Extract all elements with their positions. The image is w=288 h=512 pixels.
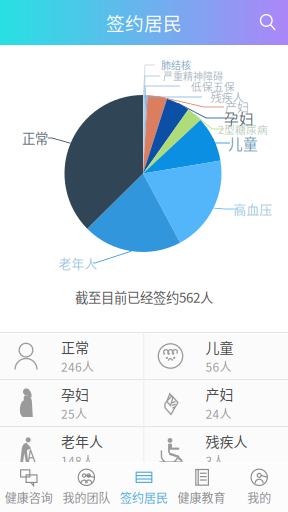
button[interactable]: 签约居民 — [115, 463, 173, 512]
button[interactable]: 健康咨询 — [0, 463, 58, 512]
button[interactable]: 健康教育 — [173, 463, 230, 512]
button[interactable]: 儿童 — [144, 333, 288, 379]
button[interactable]: 我的团队 — [58, 463, 115, 512]
button[interactable]: 孕妇 — [0, 380, 143, 426]
staticText: 24人 — [205, 405, 231, 422]
staticText: 2型糖尿病 — [218, 121, 268, 137]
staticText: 正常 — [22, 128, 48, 148]
staticText: 老年人 — [61, 431, 103, 451]
staticText: 截至目前已经签约562人 — [75, 287, 213, 307]
staticText: 产妇 — [225, 98, 249, 116]
button[interactable]: 搜索 — [248, 0, 288, 45]
staticText: 健康教育 — [178, 489, 226, 506]
staticText: 我的 — [247, 489, 271, 506]
staticText: 签约居民 — [120, 489, 168, 506]
button[interactable]: 产妇 — [144, 380, 288, 426]
button[interactable]: 正常 — [0, 333, 143, 379]
staticText: 儿童 — [228, 132, 258, 154]
button[interactable]: 老年人 — [0, 427, 143, 473]
staticText: 严重精神障碍 — [163, 69, 223, 83]
staticText: 我的团队 — [62, 489, 110, 506]
staticText: 148人 — [61, 452, 94, 469]
staticText: 56人 — [205, 358, 231, 375]
staticText: 儿童 — [205, 337, 233, 357]
staticText: 老年人 — [58, 254, 97, 272]
staticText: 低保五保 — [191, 78, 235, 94]
staticText: 3人 — [205, 452, 224, 469]
staticText: 正常 — [61, 337, 89, 357]
staticText: 孕妇 — [61, 384, 89, 404]
staticText: 残疾人 — [205, 431, 247, 451]
button[interactable]: 残疾人 — [144, 427, 288, 473]
staticText: 高血压 — [233, 200, 272, 218]
staticText: 残疾人 — [210, 89, 243, 105]
staticText: 孕妇 — [224, 107, 254, 129]
staticText: 肺结核 — [161, 58, 191, 72]
staticText: 25人 — [61, 405, 87, 422]
staticText: 246人 — [61, 358, 94, 375]
staticText: 产妇 — [205, 384, 233, 404]
staticText: 签约居民 — [106, 9, 182, 36]
staticText: 健康咨询 — [5, 489, 53, 506]
button[interactable]: 我的 — [230, 463, 288, 512]
